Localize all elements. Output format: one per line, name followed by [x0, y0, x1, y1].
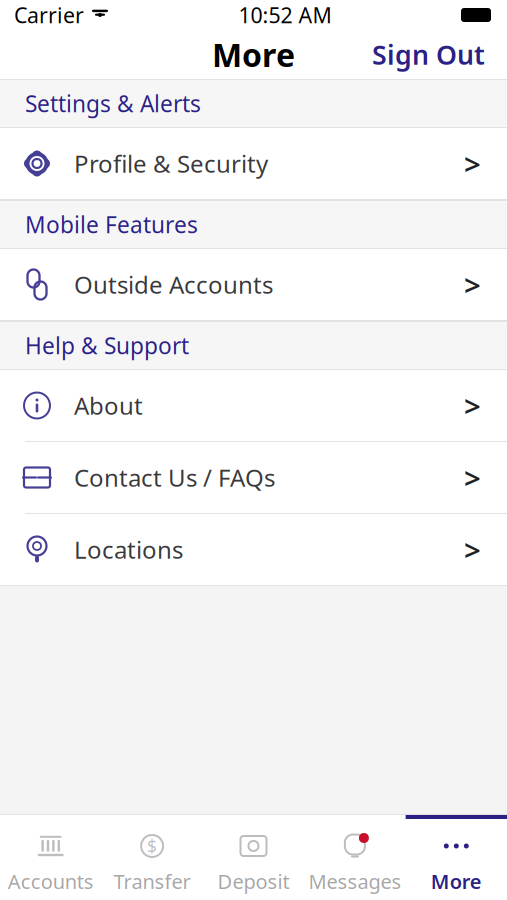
staticText: Accounts — [8, 868, 94, 895]
staticText: About — [74, 390, 143, 421]
staticText: Contact Us / FAQs — [74, 462, 275, 493]
staticText: > — [464, 530, 481, 569]
button[interactable]: Accounts — [0, 815, 101, 900]
staticText: Transfer — [114, 868, 191, 895]
staticText: Deposit — [217, 868, 289, 895]
button[interactable]: Outside Accounts — [0, 249, 507, 321]
button[interactable]: More — [406, 815, 507, 900]
staticText: > — [464, 144, 481, 183]
button[interactable]: Contact Us / FAQs — [0, 442, 507, 514]
staticText: Mobile Features — [25, 209, 198, 239]
staticText: > — [464, 386, 481, 425]
staticText: Messages — [308, 868, 401, 895]
staticText: Carrier — [14, 1, 84, 29]
button[interactable]: $ — [101, 815, 203, 900]
staticText: > — [464, 458, 481, 497]
staticText: More — [212, 33, 295, 76]
button[interactable]: Deposit — [203, 815, 304, 900]
staticText: Settings & Alerts — [25, 88, 201, 118]
button[interactable]: Locations — [0, 514, 507, 586]
button[interactable]: Sign Out — [358, 29, 499, 80]
button[interactable]: Messages — [304, 815, 406, 900]
staticText: Profile & Security — [74, 148, 268, 179]
staticText: Help & Support — [25, 330, 189, 360]
staticText: Outside Accounts — [74, 269, 273, 300]
staticText: Locations — [74, 534, 183, 565]
staticText: More — [431, 868, 482, 895]
staticText: > — [464, 265, 481, 304]
button[interactable]: About — [0, 370, 507, 442]
button[interactable]: Profile & Security — [0, 128, 507, 200]
staticText: Sign Out — [372, 37, 485, 72]
staticText: $ — [147, 834, 157, 857]
staticText: 10:52 AM — [238, 1, 331, 29]
